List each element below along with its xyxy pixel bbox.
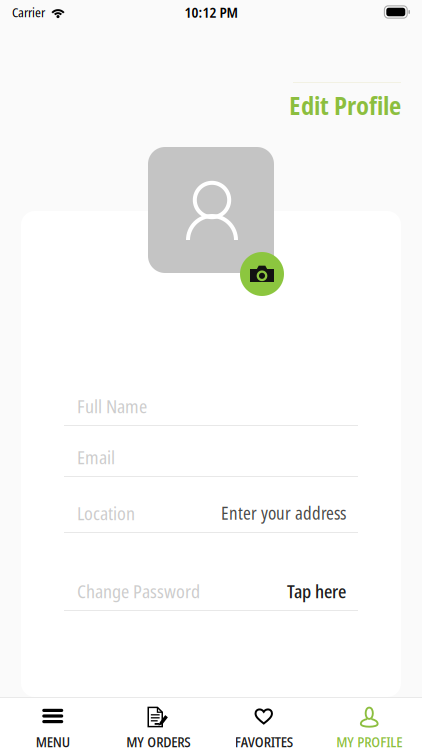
staticText: 10:12 PM [184,2,237,22]
button[interactable]: Change profile photo [240,252,284,296]
staticText: MY ORDERS [126,731,190,750]
staticText: MENU [36,731,70,750]
staticText: Email [77,444,115,470]
staticText: MY PROFILE [336,731,402,750]
button[interactable]: Email [64,447,358,477]
staticText: Tap here [287,578,346,604]
button[interactable]: FAVORITES [211,693,316,750]
staticText: Location [77,500,135,526]
button[interactable]: MY ORDERS [105,693,211,750]
button[interactable]: MY PROFILE [316,693,422,750]
staticText: Full Name [77,393,147,419]
staticText: Carrier [12,3,45,21]
button[interactable]: Location [64,503,358,533]
staticText: Change Password [77,578,200,604]
button[interactable]: Edit Profile [289,88,401,122]
button[interactable]: Full Name [64,396,358,426]
staticText: Enter your address [221,501,346,525]
button[interactable]: Change Password [64,581,358,611]
staticText: FAVORITES [235,731,293,750]
button[interactable]: MENU [0,693,105,750]
staticText: Edit Profile [289,88,401,122]
